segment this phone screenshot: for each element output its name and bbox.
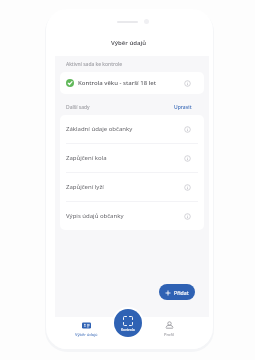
button[interactable]: Informace <box>184 80 191 87</box>
staticText: Profil <box>164 332 174 337</box>
button[interactable]: Přidat <box>159 284 195 300</box>
button[interactable]: Informace <box>184 184 191 191</box>
button[interactable]: Informace <box>184 155 191 162</box>
staticText: Zapůjčení kola <box>66 154 107 162</box>
button[interactable]: Kontrola <box>114 309 142 337</box>
button[interactable]: Zapůjčení kola <box>60 144 204 172</box>
staticText: Přidat <box>174 289 189 296</box>
staticText: Výpis údajů občanky <box>66 212 124 220</box>
button[interactable]: Základní údaje občanky <box>60 115 204 143</box>
staticText: Výběr údajů <box>75 332 98 337</box>
button[interactable]: Kontrola věku - starší 18 let <box>60 72 204 94</box>
staticText: Upravit <box>174 104 192 111</box>
staticText: Základní údaje občanky <box>66 125 133 133</box>
staticText: Zapůjčení lyží <box>66 183 104 191</box>
button[interactable]: Upravit <box>174 104 192 111</box>
staticText: Aktivní sada ke kontrole <box>66 61 123 68</box>
staticText: Kontrola <box>121 327 135 332</box>
button[interactable]: Výběr údajů <box>70 321 102 337</box>
button[interactable]: Zapůjčení lyží <box>60 173 204 201</box>
button[interactable]: Výpis údajů občanky <box>60 202 204 230</box>
button[interactable]: Profil <box>155 321 183 337</box>
button[interactable]: Informace <box>184 126 191 133</box>
staticText: Kontrola věku - starší 18 let <box>78 79 157 87</box>
staticText: Další sady <box>66 104 90 111</box>
button[interactable]: Informace <box>184 213 191 220</box>
staticText: Výběr údajů <box>111 39 147 47</box>
